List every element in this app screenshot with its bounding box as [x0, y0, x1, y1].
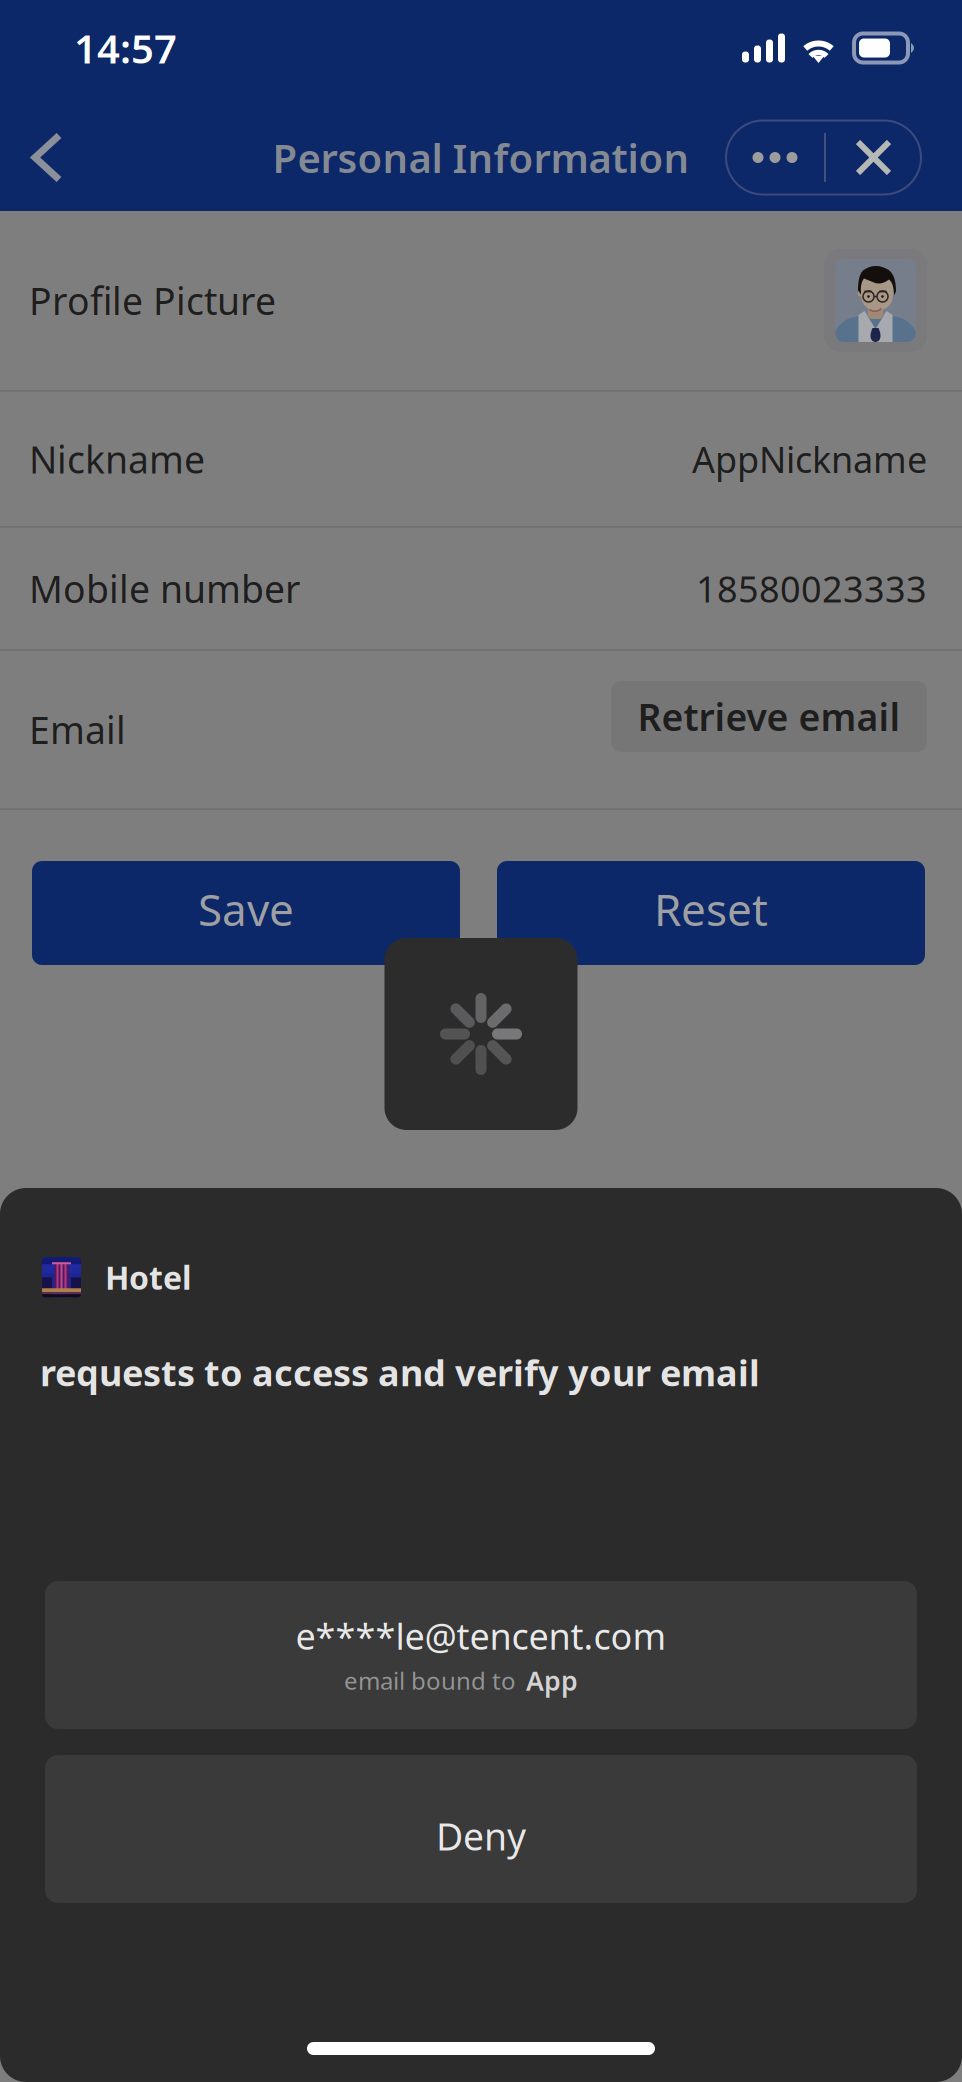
staticText: Save	[198, 880, 294, 938]
staticText: Profile Picture	[29, 276, 276, 325]
staticText: Email	[29, 705, 126, 754]
button[interactable]: Back	[0, 112, 87, 202]
staticText: Nickname	[29, 434, 205, 484]
staticText: 14:57	[74, 21, 177, 74]
staticText: e****le@tencent.com	[295, 1612, 666, 1660]
button[interactable]: Close mini program	[826, 120, 921, 194]
staticText: Personal Information	[272, 131, 689, 184]
staticText: App	[526, 1663, 578, 1698]
staticText: Deny	[436, 1811, 526, 1861]
staticText: Retrieve email	[637, 692, 900, 741]
button[interactable]: e****le@tencent.com	[45, 1581, 917, 1729]
button[interactable]: Retrieve email	[611, 694, 927, 765]
button[interactable]: Nickname	[0, 392, 962, 526]
staticText: AppNickname	[692, 435, 927, 483]
staticText: requests to access and verify your email	[40, 1348, 760, 1396]
staticText: Mobile number	[29, 564, 300, 613]
staticText: 18580023333	[696, 565, 927, 612]
staticText: Reset	[654, 880, 768, 938]
button[interactable]: Reset	[497, 861, 925, 965]
button[interactable]: Email	[0, 651, 962, 808]
button[interactable]: Profile Picture	[0, 211, 962, 390]
staticText: email bound to	[344, 1664, 516, 1696]
button[interactable]: Mobile number	[0, 528, 962, 649]
staticText: Hotel	[105, 1256, 192, 1298]
button[interactable]: More options	[726, 120, 824, 194]
button[interactable]: Deny	[45, 1755, 917, 1903]
button[interactable]: Save	[32, 861, 460, 965]
